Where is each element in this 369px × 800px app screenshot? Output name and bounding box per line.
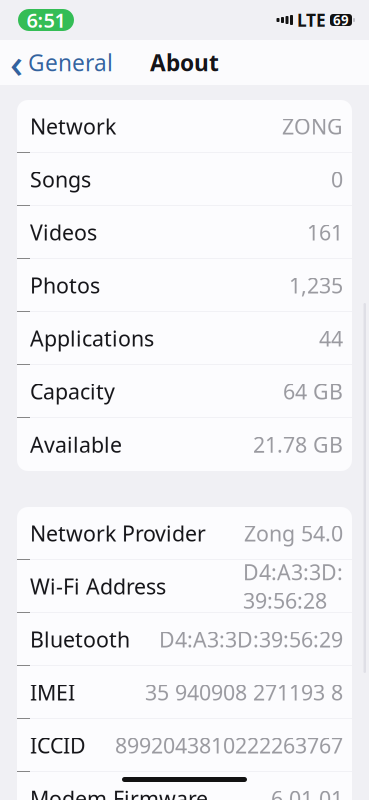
staticText: Wi-Fi Address — [30, 572, 166, 600]
staticText: Applications — [30, 324, 154, 352]
staticText: 69 — [333, 11, 349, 29]
staticText: IMEI — [30, 678, 75, 706]
button[interactable]: Videos — [17, 206, 352, 259]
staticText: Network Provider — [30, 519, 206, 547]
staticText: ‹ — [10, 36, 23, 89]
staticText: Capacity — [30, 377, 115, 405]
button[interactable]: Photos — [17, 259, 352, 312]
staticText: 8992043810222263767 — [115, 731, 343, 759]
staticText: 0 — [331, 165, 343, 193]
staticText: 35 940908 271193 8 — [145, 678, 343, 706]
button[interactable]: ICCID — [17, 719, 352, 772]
staticText: General — [28, 47, 113, 77]
staticText: ICCID — [30, 731, 86, 759]
staticText: Bluetooth — [30, 625, 130, 653]
staticText: Zong 54.0 — [244, 519, 343, 547]
staticText: Network — [30, 112, 116, 140]
button[interactable]: Modem Firmware — [17, 772, 352, 800]
staticText: 6:51 — [26, 7, 65, 33]
staticText: 44 — [319, 324, 343, 352]
staticText: D4:A3:3D:39:56:28 — [243, 558, 343, 615]
staticText: D4:A3:3D:39:56:29 — [159, 625, 343, 653]
staticText: 21.78 GB — [253, 430, 343, 459]
button[interactable]: Network — [17, 100, 352, 153]
button[interactable]: Bluetooth — [17, 613, 352, 666]
staticText: ZONG — [282, 112, 343, 140]
button[interactable]: Capacity — [17, 365, 352, 418]
staticText: LTE — [297, 8, 326, 31]
button[interactable]: Wi-Fi Address — [17, 560, 352, 613]
staticText: 1,235 — [289, 271, 343, 299]
staticText: About — [150, 47, 219, 77]
staticText: Photos — [30, 271, 100, 299]
staticText: Videos — [30, 218, 97, 246]
button[interactable]: ‹ — [0, 40, 121, 84]
button[interactable]: Available — [17, 418, 352, 471]
staticText: 64 GB — [283, 377, 343, 405]
staticText: Available — [30, 430, 122, 459]
staticText: 6.01.01 — [271, 784, 343, 800]
button[interactable]: Applications — [17, 312, 352, 365]
staticText: Songs — [30, 165, 91, 193]
button[interactable]: Network Provider — [17, 507, 352, 560]
button[interactable]: IMEI — [17, 666, 352, 719]
button[interactable]: Songs — [17, 153, 352, 206]
staticText: 161 — [307, 218, 343, 246]
staticText: Modem Firmware — [30, 784, 208, 800]
